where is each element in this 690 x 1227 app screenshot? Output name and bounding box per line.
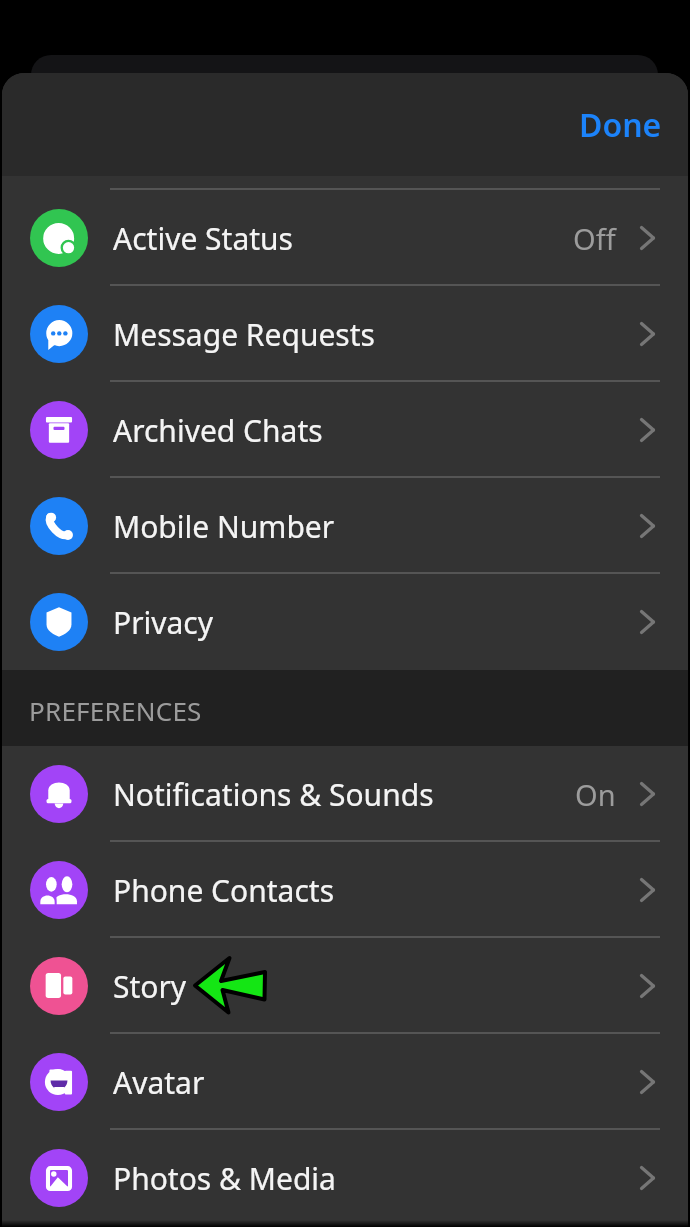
staticText: Privacy (113, 602, 214, 643)
staticText: PREFERENCES (29, 693, 202, 728)
staticText: Avatar (113, 1062, 205, 1103)
staticText: Done (579, 103, 662, 147)
button[interactable]: Avatar (2, 1034, 688, 1130)
staticText: Active Status (113, 218, 293, 259)
staticText: Phone Contacts (113, 870, 335, 911)
staticText: Story (113, 966, 187, 1007)
button[interactable]: Phone Contacts (2, 842, 688, 938)
staticText: Archived Chats (113, 410, 323, 451)
button[interactable]: Active Status (2, 190, 688, 286)
button[interactable]: Done (553, 89, 688, 161)
staticText: Photos & Media (113, 1158, 336, 1199)
button[interactable]: Archived Chats (2, 382, 688, 478)
staticText: Off (573, 219, 616, 258)
button[interactable]: Notifications & Sounds (2, 746, 688, 842)
button[interactable]: Message Requests (2, 286, 688, 382)
staticText: Notifications & Sounds (113, 774, 434, 815)
staticText: Message Requests (113, 314, 375, 355)
button[interactable]: Privacy (2, 574, 688, 670)
button[interactable]: Story (2, 938, 688, 1034)
button[interactable]: Mobile Number (2, 478, 688, 574)
staticText: Mobile Number (113, 506, 335, 547)
staticText: On (575, 775, 616, 814)
button[interactable]: Photos & Media (2, 1130, 688, 1226)
